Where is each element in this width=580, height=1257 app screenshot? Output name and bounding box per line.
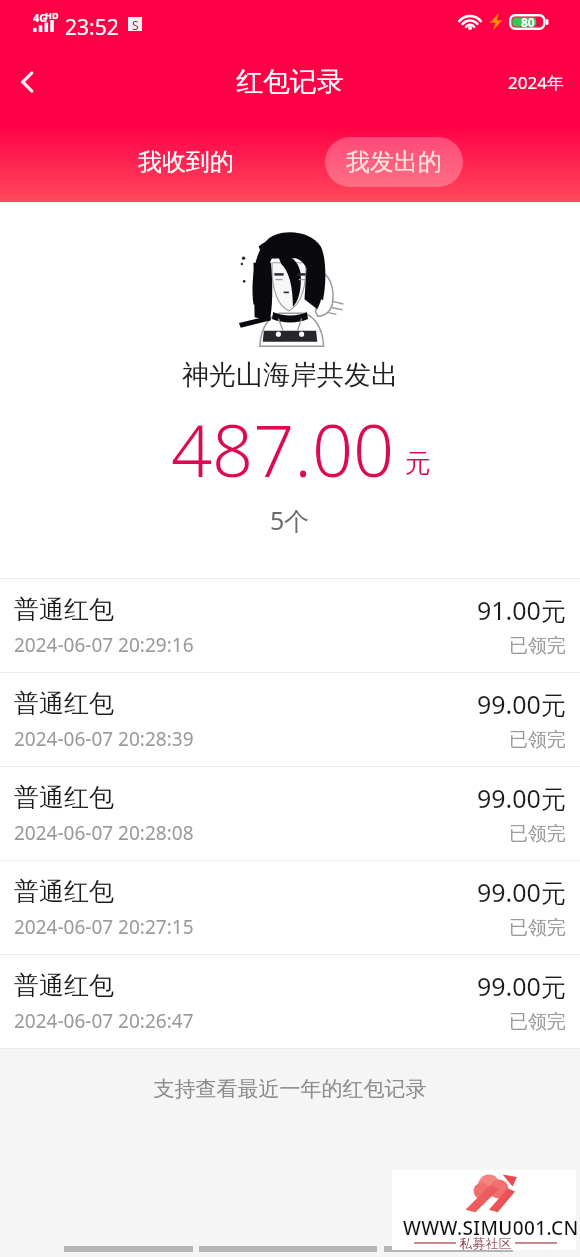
staticText: 99.00元 (477, 687, 566, 721)
staticText: 已领完 (509, 916, 566, 940)
staticText: 普通红包 (14, 688, 114, 719)
staticText: 普通红包 (14, 876, 114, 907)
staticText: 2024-06-07 20:28:08 (14, 820, 194, 846)
button[interactable]: 普通红包 (0, 861, 580, 954)
staticText: 私募社区 (456, 1234, 515, 1252)
button[interactable]: 我发出的 (325, 137, 463, 187)
staticText: 99.00元 (477, 969, 566, 1003)
staticText: 已领完 (509, 1010, 566, 1034)
button[interactable]: 普通红包 (0, 673, 580, 766)
staticText: 普通红包 (14, 782, 114, 813)
button[interactable]: 普通红包 (0, 767, 580, 860)
staticText: 已领完 (509, 634, 566, 658)
staticText: 4G (33, 10, 48, 25)
staticText: 普通红包 (14, 970, 114, 1001)
staticText: 神光山海岸共发出 (182, 358, 398, 392)
button[interactable]: 普通红包 (0, 579, 580, 672)
staticText: 红包记录 (236, 65, 344, 99)
staticText: 99.00元 (477, 875, 566, 909)
staticText: 已领完 (509, 822, 566, 846)
staticText: 91.00元 (477, 593, 566, 627)
button[interactable]: Home (199, 1243, 377, 1255)
button[interactable]: Back (4, 58, 52, 106)
button[interactable]: Avatar (232, 228, 348, 344)
button[interactable]: 我收到的 (117, 137, 255, 187)
staticText: 23:52 (65, 13, 119, 42)
staticText: HD (45, 9, 59, 21)
staticText: 元 (405, 447, 431, 480)
staticText: 我收到的 (138, 147, 234, 177)
button[interactable]: 普通红包 (0, 955, 580, 1048)
button[interactable]: Back (64, 1243, 193, 1255)
staticText: 99.00元 (477, 781, 566, 815)
staticText: 80 (521, 14, 535, 30)
staticText: 普通红包 (14, 594, 114, 625)
staticText: 已领完 (509, 728, 566, 752)
staticText: 487.00 (171, 400, 395, 498)
staticText: 2024-06-07 20:29:16 (14, 632, 194, 658)
staticText: 支持查看最近一年的红包记录 (0, 1076, 580, 1102)
staticText: 2024年 (508, 71, 564, 94)
staticText: 2024-06-07 20:26:47 (14, 1008, 194, 1034)
staticText: S (132, 17, 139, 31)
staticText: 2024-06-07 20:27:15 (14, 914, 194, 940)
staticText: 我发出的 (346, 147, 442, 177)
button[interactable]: Recents (384, 1243, 513, 1255)
button[interactable]: 2024年 (492, 63, 580, 102)
staticText: 5个 (270, 503, 310, 537)
staticText: WWW.SIMU001.CN (403, 1215, 579, 1241)
staticText: 2024-06-07 20:28:39 (14, 726, 194, 752)
